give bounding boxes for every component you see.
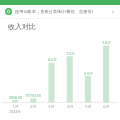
staticText: 6.5万 [84, 71, 93, 76]
staticText: 9.8万 [102, 40, 111, 45]
staticText: 收入对比 [8, 22, 36, 31]
staticText: 5月 [85, 104, 92, 109]
staticText: 7.5万 [66, 51, 75, 56]
staticText: ¥1704.50 [26, 93, 41, 98]
staticText: ¥838.50 [9, 95, 22, 100]
staticText: 使用记账本，查看分类统计(餐饮、交通等) [15, 9, 109, 15]
staticText: 8.6万 [48, 57, 57, 62]
button[interactable]: 查看分类统计 [109, 8, 117, 16]
staticText: 2024年 [9, 109, 21, 114]
staticText: 6月 [103, 104, 110, 109]
staticText: 1月 [12, 104, 19, 109]
staticText: 4月 [67, 104, 74, 109]
staticText: 2月 [30, 104, 37, 109]
button[interactable]: 使用记账本，查看分类统计(餐饮、交通等) [0, 5, 120, 18]
staticText: 3月 [48, 104, 55, 109]
